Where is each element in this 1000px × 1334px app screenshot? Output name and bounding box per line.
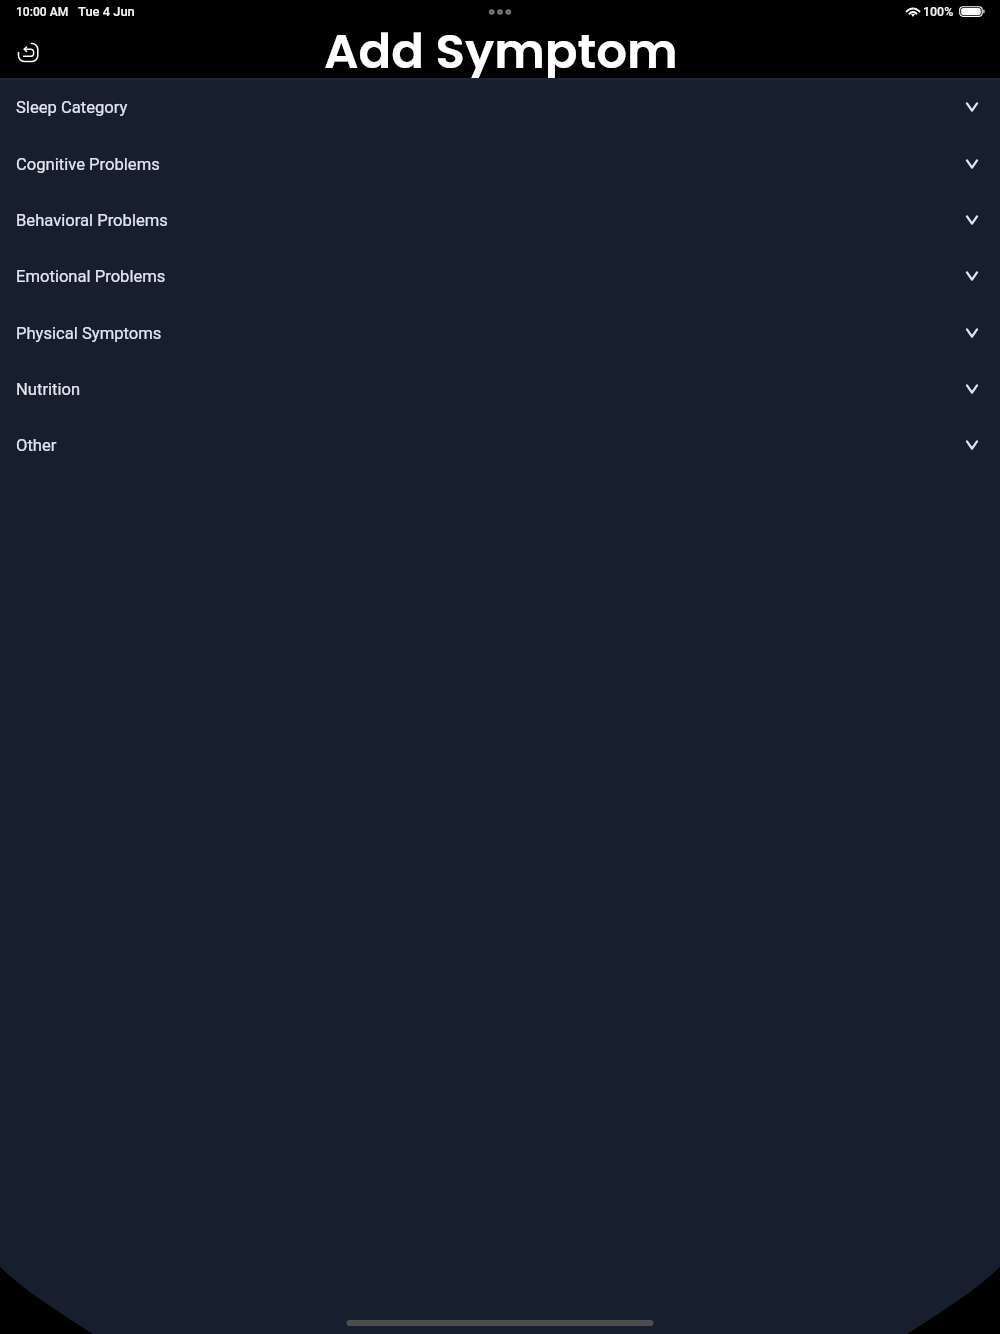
staticText: Nutrition [16, 380, 81, 399]
staticText: Add Symptom [324, 17, 678, 85]
other: Expand Nutrition [964, 382, 980, 396]
other: Expand Emotional Problems [964, 269, 980, 283]
other: Expand Cognitive Problems [964, 157, 980, 171]
staticText: Other [16, 436, 57, 455]
staticText: Emotional Problems [16, 267, 166, 286]
other: Expand Sleep Category [964, 100, 980, 114]
button[interactable]: Sleep Category [0, 79, 1000, 135]
staticText: Cognitive Problems [16, 155, 160, 174]
button[interactable]: Back [6, 30, 50, 74]
staticText: 100% [923, 4, 954, 19]
button[interactable]: Cognitive Problems [0, 136, 1000, 192]
button[interactable]: Physical Symptoms [0, 305, 1000, 361]
button[interactable]: Emotional Problems [0, 248, 1000, 304]
other: Expand Behavioral Problems [964, 213, 980, 227]
staticText: Behavioral Problems [16, 211, 168, 230]
button[interactable]: Nutrition [0, 361, 1000, 417]
staticText: Tue 4 Jun [78, 4, 135, 19]
staticText: Sleep Category [16, 98, 128, 117]
staticText: Physical Symptoms [16, 324, 162, 343]
button[interactable]: Behavioral Problems [0, 192, 1000, 248]
staticText: 10:00 AM [16, 5, 69, 19]
button[interactable]: Other [0, 417, 1000, 473]
other: Expand Other [964, 438, 980, 452]
other: Expand Physical Symptoms [964, 326, 980, 340]
